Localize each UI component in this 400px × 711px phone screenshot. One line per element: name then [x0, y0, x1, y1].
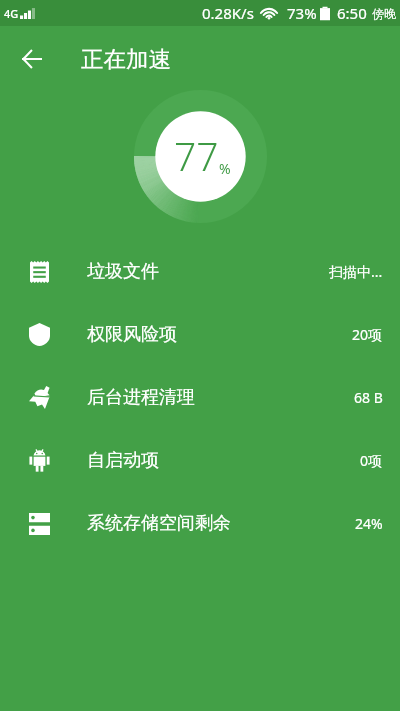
staticText: 系统存储空间剩余	[87, 512, 231, 535]
staticText: 扫描中...	[329, 262, 383, 281]
button[interactable]: 后台进程清理	[0, 366, 400, 429]
staticText: 0.28K/s	[202, 3, 254, 23]
staticText: 24%	[355, 514, 383, 533]
staticText: 自启动项	[87, 449, 159, 472]
button[interactable]: 系统存储空间剩余	[0, 492, 400, 555]
button[interactable]: 垃圾文件	[0, 240, 400, 303]
button[interactable]: 自启动项	[0, 429, 400, 492]
staticText: 权限风险项	[87, 323, 177, 346]
staticText: 77	[174, 129, 219, 182]
staticText: 正在加速	[81, 45, 171, 73]
staticText: 垃圾文件	[87, 260, 159, 283]
staticText: 6:50	[337, 3, 367, 23]
staticText: 20项	[352, 325, 383, 344]
staticText: 4G	[4, 6, 19, 21]
button[interactable]: Back	[10, 37, 53, 80]
staticText: %	[219, 159, 231, 178]
staticText: 73%	[287, 3, 317, 23]
staticText: 后台进程清理	[87, 386, 195, 409]
staticText: 68 B	[354, 388, 383, 407]
button[interactable]: 权限风险项	[0, 303, 400, 366]
staticText: 0项	[360, 451, 383, 470]
staticText: 傍晚	[372, 6, 396, 21]
